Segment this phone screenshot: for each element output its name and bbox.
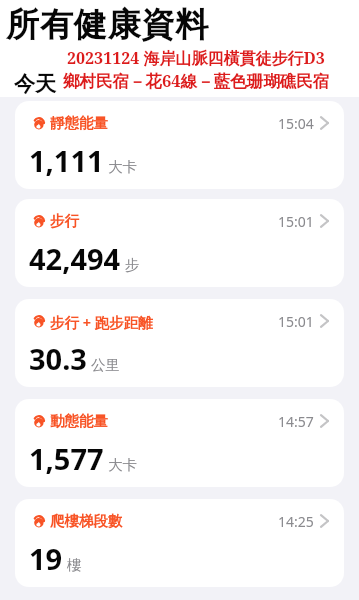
staticText: 14:57 [278,412,314,430]
staticText: 大卡 [108,456,137,474]
button[interactable]: 步行 [15,199,344,287]
staticText: 公里 [91,356,120,374]
staticText: 動態能量 [50,412,108,430]
staticText: 15:01 [278,212,314,230]
staticText: 19 [29,539,63,578]
staticText: 30.3 [29,339,87,378]
staticText: 1,111 [29,141,104,180]
staticText: 爬樓梯段數 [50,512,123,530]
staticText: 大卡 [108,158,137,176]
button[interactable]: 步行 + 跑步距離 [15,299,344,387]
staticText: 步 [125,256,140,274]
button[interactable]: 爬樓梯段數 [15,499,344,587]
button[interactable]: 靜態能量 [15,101,344,189]
staticText: 步行 + 跑步距離 [50,312,153,330]
button[interactable]: 動態能量 [15,399,344,487]
staticText: 42,494 [29,239,121,278]
staticText: 15:04 [278,114,314,132]
staticText: 14:25 [278,512,314,530]
staticText: 鄉村民宿－花64線－藍色珊瑚礁民宿 [63,69,330,92]
staticText: 樓 [67,556,82,574]
staticText: 步行 [50,212,79,230]
staticText: 20231124 海岸山脈四橫貫徒步行D3 [67,47,325,69]
staticText: 靜態能量 [50,114,108,132]
staticText: 今天 [14,71,56,97]
staticText: 1,577 [29,439,104,478]
staticText: 15:01 [278,312,314,330]
staticText: 所有健康資料 [6,4,210,46]
